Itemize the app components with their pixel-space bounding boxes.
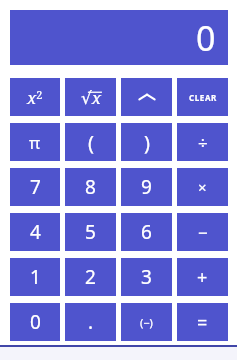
staticText: 0: [196, 15, 216, 61]
staticText: (−): [140, 315, 153, 330]
button[interactable]: 8: [65, 168, 116, 206]
staticText: 1: [30, 264, 41, 290]
staticText: 8: [85, 174, 96, 200]
button[interactable]: (: [65, 123, 116, 161]
button[interactable]: ÷: [177, 123, 228, 161]
button[interactable]: 9: [121, 168, 172, 206]
button[interactable]: +: [177, 258, 228, 296]
button[interactable]: =: [177, 303, 228, 341]
staticText: ÷: [198, 131, 208, 154]
button[interactable]: 0: [10, 10, 228, 65]
button[interactable]: π: [10, 123, 60, 161]
staticText: .: [88, 309, 94, 335]
staticText: −: [198, 221, 208, 244]
button[interactable]: x squared: [10, 78, 60, 116]
button[interactable]: −: [177, 213, 228, 251]
staticText: ): [144, 129, 150, 156]
button[interactable]: ): [121, 123, 172, 161]
staticText: 0: [30, 309, 41, 335]
button[interactable]: 0: [10, 303, 60, 341]
button[interactable]: Power: [121, 78, 172, 116]
button[interactable]: 5: [65, 213, 116, 251]
staticText: ×: [198, 177, 207, 197]
staticText: x2: [27, 86, 43, 109]
staticText: 7: [30, 174, 41, 200]
staticText: 9: [141, 174, 152, 200]
button[interactable]: square root of x: [65, 78, 116, 116]
staticText: =: [197, 310, 208, 335]
staticText: +: [197, 265, 208, 290]
button[interactable]: Clear: [177, 78, 228, 116]
button[interactable]: ×: [177, 168, 228, 206]
staticText: 5: [85, 219, 96, 245]
button[interactable]: 3: [121, 258, 172, 296]
staticText: 6: [141, 219, 152, 245]
button[interactable]: 1: [10, 258, 60, 296]
button[interactable]: (−): [121, 303, 172, 341]
staticText: CLEAR: [189, 92, 217, 103]
staticText: (: [88, 129, 94, 156]
button[interactable]: 4: [10, 213, 60, 251]
staticText: π: [29, 131, 41, 154]
button[interactable]: .: [65, 303, 116, 341]
button[interactable]: 6: [121, 213, 172, 251]
staticText: 3: [141, 264, 152, 290]
staticText: 4: [30, 219, 41, 245]
staticText: √x: [81, 86, 102, 109]
button[interactable]: 7: [10, 168, 60, 206]
staticText: 2: [85, 264, 96, 290]
button[interactable]: 2: [65, 258, 116, 296]
